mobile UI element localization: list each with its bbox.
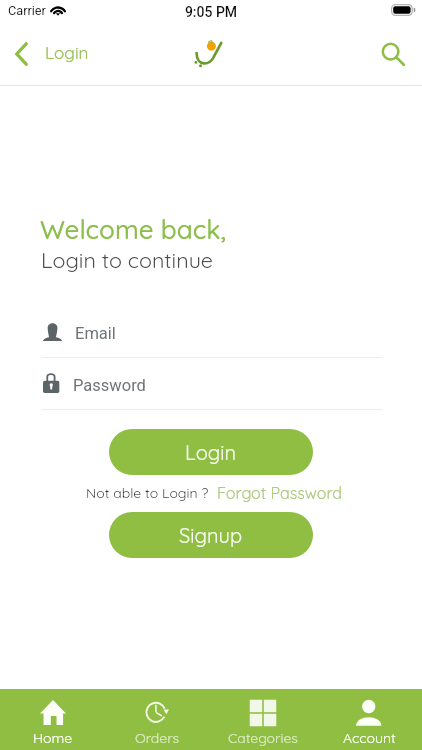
staticText: Login bbox=[185, 440, 237, 465]
button[interactable]: Categories bbox=[210, 689, 316, 750]
staticText: Not able to Login ? bbox=[86, 484, 209, 502]
staticText: Email bbox=[75, 324, 116, 343]
staticText: Password bbox=[73, 376, 146, 395]
staticText: Login bbox=[45, 42, 89, 63]
button[interactable]: Account bbox=[316, 689, 422, 750]
staticText: Account bbox=[343, 729, 396, 747]
button[interactable]: Forgot Password bbox=[217, 483, 342, 503]
staticText: Orders bbox=[135, 729, 180, 747]
button[interactable]: Login bbox=[0, 28, 103, 86]
staticText: Carrier bbox=[8, 3, 46, 18]
staticText: Categories bbox=[228, 729, 298, 747]
button[interactable]: Orders bbox=[105, 689, 210, 750]
staticText: 9:05 PM bbox=[0, 4, 422, 20]
button[interactable]: Home bbox=[0, 689, 105, 750]
button[interactable]: Search bbox=[372, 33, 414, 75]
staticText: Welcome back, bbox=[40, 213, 227, 246]
button[interactable]: Signup bbox=[109, 512, 313, 558]
staticText: Home bbox=[33, 729, 73, 747]
staticText: Login to continue bbox=[41, 246, 214, 273]
button[interactable]: Login bbox=[109, 429, 313, 475]
staticText: Signup bbox=[179, 523, 243, 548]
